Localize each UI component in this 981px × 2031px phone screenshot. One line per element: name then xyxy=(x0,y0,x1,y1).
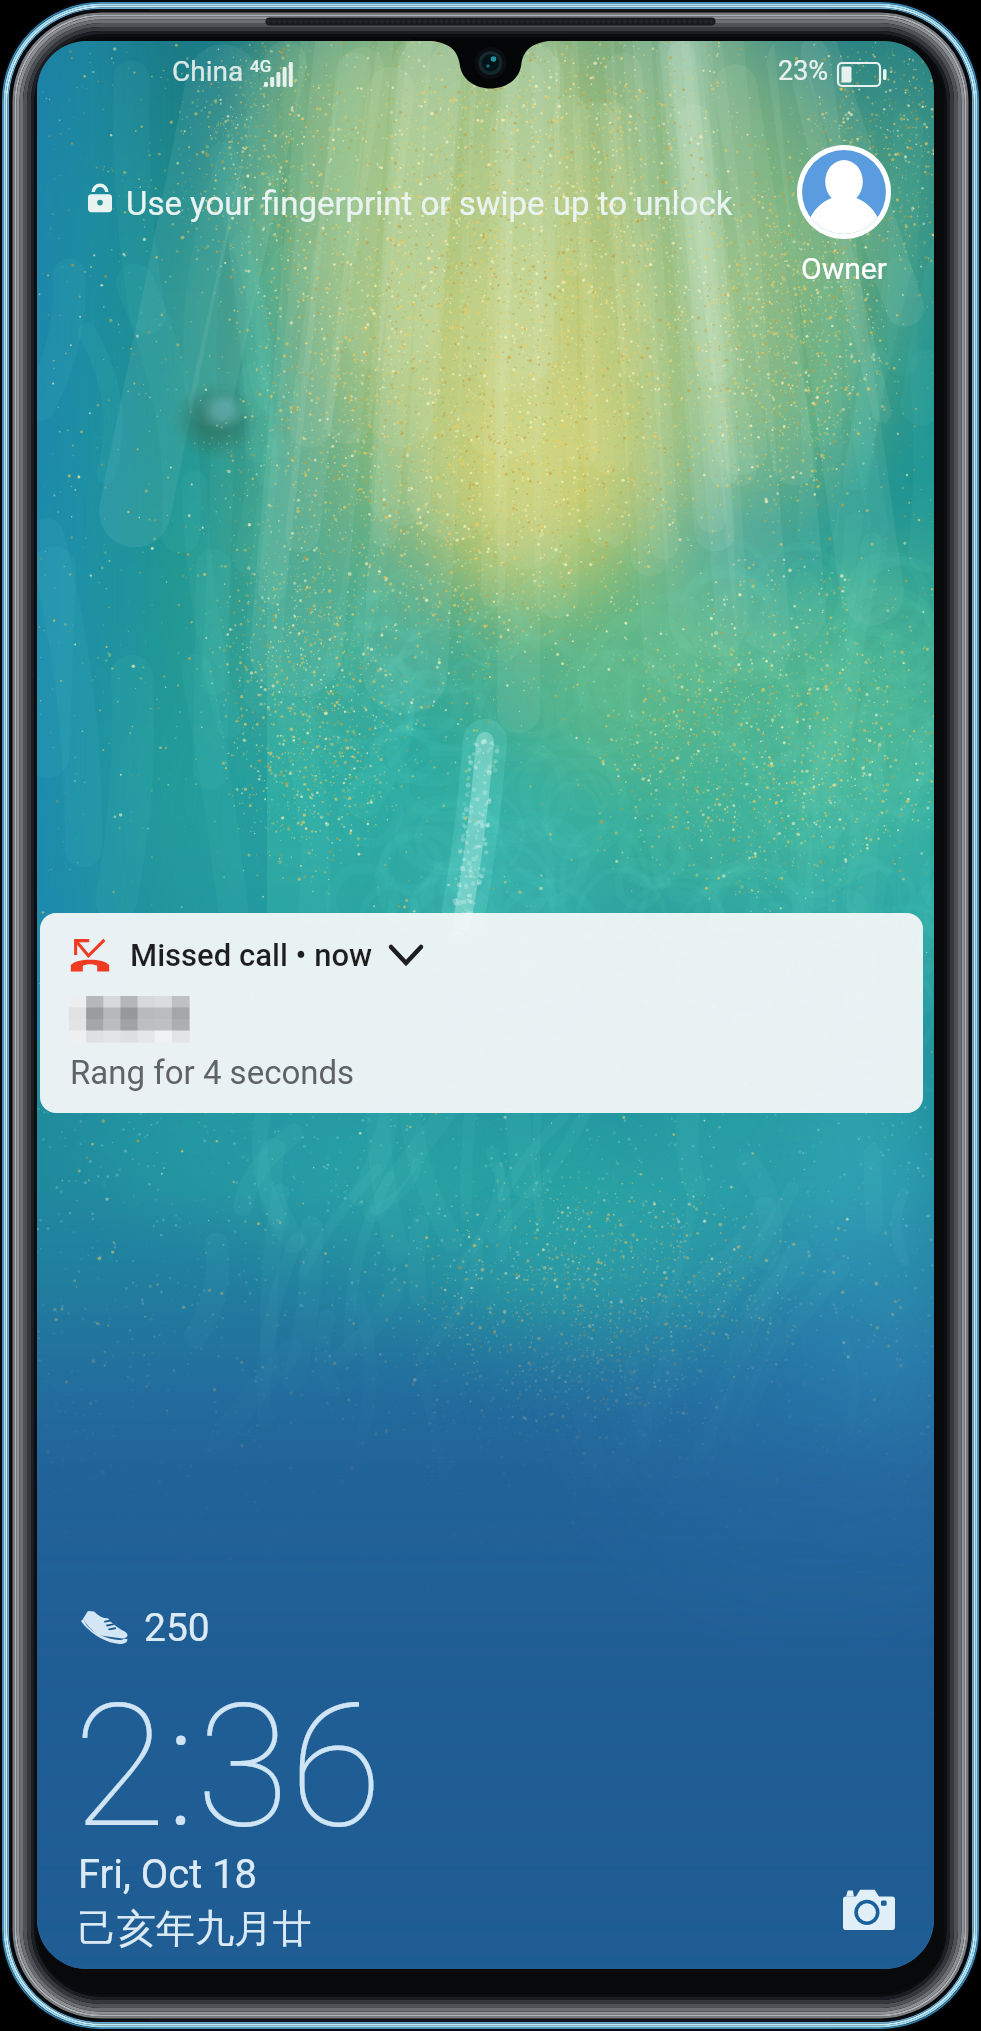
staticText: 己亥年九月廿 xyxy=(78,1904,312,1953)
button[interactable]: Missed call • now xyxy=(40,913,923,1113)
staticText: Missed call • now xyxy=(130,937,373,973)
staticText: Fri, Oct 18 xyxy=(78,1851,258,1898)
staticText: 2:36 xyxy=(73,1667,383,1866)
staticText: 250 xyxy=(144,1605,210,1651)
button[interactable]: Owner xyxy=(783,145,905,286)
button[interactable]: Camera xyxy=(838,1878,900,1940)
staticText: Use your fingerprint or swipe up to unlo… xyxy=(126,184,733,223)
staticText: Owner xyxy=(801,251,887,286)
staticText: Rang for 4 seconds xyxy=(70,1053,355,1092)
staticText: China xyxy=(172,55,244,88)
staticText: 23% xyxy=(778,55,829,87)
staticText: 4G xyxy=(250,56,272,76)
